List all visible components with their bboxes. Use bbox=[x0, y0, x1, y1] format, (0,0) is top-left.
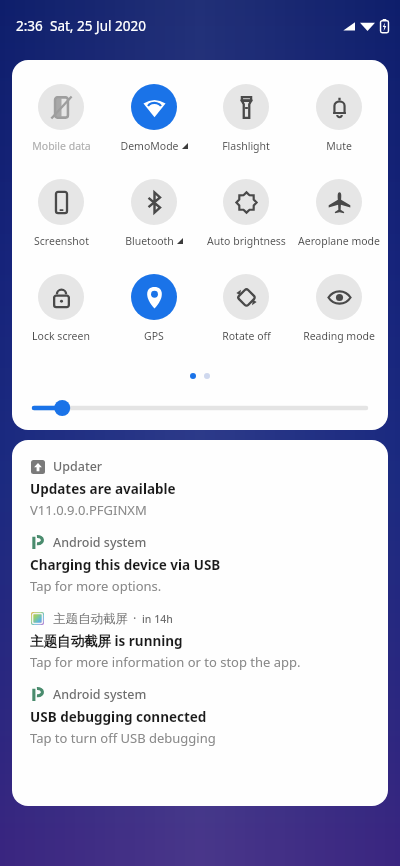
staticText: Sat, 25 Jul 2020 bbox=[50, 17, 146, 35]
button[interactable]: Brightness bbox=[34, 395, 366, 421]
staticText: Charging this device via USB bbox=[30, 556, 221, 574]
staticText: Tap for more options. bbox=[30, 577, 162, 595]
staticText: Rotate off bbox=[222, 329, 271, 343]
button[interactable]: 主题自动截屏 bbox=[12, 604, 388, 680]
staticText: USB debugging connected bbox=[30, 708, 207, 726]
staticText: in 14h bbox=[142, 612, 173, 626]
staticText: 2:36 bbox=[16, 17, 43, 35]
button[interactable]: Android system bbox=[12, 680, 388, 756]
staticText: Android system bbox=[53, 534, 147, 551]
staticText: GPS bbox=[144, 329, 164, 343]
button[interactable]: Updater bbox=[12, 452, 388, 528]
staticText: Mobile data bbox=[32, 139, 91, 153]
staticText: 主题自动截屏 bbox=[53, 611, 128, 627]
button[interactable]: Android system bbox=[12, 528, 388, 604]
button[interactable]: Aeroplane mode bbox=[296, 177, 382, 248]
button[interactable]: DemoMode bbox=[111, 82, 197, 153]
button[interactable]: Mute bbox=[296, 82, 382, 153]
staticText: Tap for more information or to stop the … bbox=[30, 653, 301, 671]
staticText: Updates are available bbox=[30, 480, 176, 498]
button[interactable]: Reading mode bbox=[296, 272, 382, 343]
staticText: Mute bbox=[326, 139, 352, 153]
staticText: Updater bbox=[53, 458, 103, 475]
button[interactable]: Flashlight bbox=[203, 82, 289, 153]
button[interactable]: Lock screen bbox=[18, 272, 104, 343]
button[interactable]: Screenshot bbox=[18, 177, 104, 248]
staticText: 主题自动截屏 is running bbox=[30, 632, 183, 650]
staticText: Auto brightness bbox=[207, 234, 286, 248]
button[interactable]: Bluetooth bbox=[111, 177, 197, 248]
button[interactable]: Rotate off bbox=[203, 272, 289, 343]
staticText: Tap to turn off USB debugging bbox=[30, 729, 216, 747]
staticText: Android system bbox=[53, 686, 147, 703]
staticText: Screenshot bbox=[34, 234, 89, 248]
staticText: DemoMode bbox=[120, 139, 179, 153]
staticText: Reading mode bbox=[303, 329, 375, 343]
staticText: · bbox=[133, 610, 137, 627]
staticText: Lock screen bbox=[32, 329, 90, 343]
button[interactable]: GPS bbox=[111, 272, 197, 343]
staticText: Aeroplane mode bbox=[298, 234, 380, 248]
staticText: Flashlight bbox=[222, 139, 270, 153]
staticText: V11.0.9.0.PFGINXM bbox=[30, 501, 147, 519]
button[interactable]: Mobile data bbox=[18, 82, 104, 153]
button[interactable]: Auto brightness bbox=[203, 177, 289, 248]
staticText: Bluetooth bbox=[125, 234, 174, 248]
